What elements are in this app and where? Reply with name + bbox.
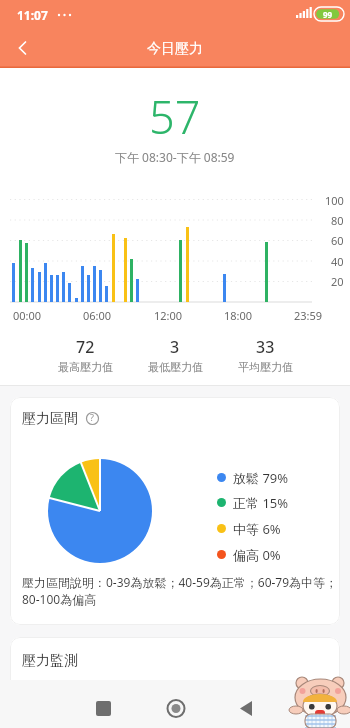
staticText: 最低壓力值 <box>148 360 203 374</box>
staticText: 20 <box>331 274 344 289</box>
staticText: 3 <box>170 336 180 358</box>
staticText: 放鬆 79% <box>233 469 289 485</box>
button[interactable]: 中等 6% <box>217 520 281 536</box>
staticText: 18:00 <box>224 308 253 323</box>
staticText: 壓力監測 <box>22 652 78 670</box>
staticText: 正常 15% <box>233 494 289 510</box>
staticText: 最高壓力值 <box>58 360 113 374</box>
staticText: 中等 6% <box>233 520 281 536</box>
staticText: 99 <box>323 9 333 20</box>
button[interactable]: 3 <box>130 336 220 374</box>
staticText: 12:00 <box>154 308 183 323</box>
staticText: 今日壓力 <box>147 40 203 58</box>
staticText: 57 <box>149 86 201 147</box>
staticText: 下午 08:30-下午 08:59 <box>115 149 235 165</box>
button[interactable] <box>228 690 264 726</box>
button[interactable]: 72 <box>40 336 130 374</box>
button[interactable]: 33 <box>220 336 310 374</box>
staticText: 平均壓力值 <box>238 360 293 374</box>
staticText: 80 <box>331 213 344 228</box>
staticText: 偏高 0% <box>233 546 281 562</box>
staticText: 11:07 <box>17 7 48 23</box>
button[interactable] <box>10 34 38 62</box>
staticText: 72 <box>76 336 95 358</box>
staticText: 壓力區間說明：0-39為放鬆；40-59為正常；60-79為中等； <box>22 574 338 590</box>
button[interactable]: 壓力監測 <box>10 637 340 728</box>
staticText: 80-100為偏高 <box>22 591 97 607</box>
button[interactable]: 壓力區間 <box>10 397 340 625</box>
button[interactable]: 偏高 0% <box>217 546 281 562</box>
staticText: 00:00 <box>13 308 42 323</box>
staticText: 23:59 <box>294 308 323 323</box>
button[interactable]: 今日壓力 <box>0 39 350 59</box>
button[interactable] <box>86 690 122 726</box>
staticText: 06:00 <box>83 308 112 323</box>
staticText: 40 <box>331 254 344 269</box>
staticText: 33 <box>256 336 275 358</box>
staticText: 100 <box>325 193 344 208</box>
button[interactable]: 放鬆 79% <box>217 469 289 485</box>
staticText: ? <box>90 411 94 423</box>
button[interactable]: 正常 15% <box>217 494 289 510</box>
staticText: 壓力區間 <box>22 410 78 428</box>
button[interactable] <box>158 690 194 726</box>
staticText: 60 <box>331 233 344 248</box>
